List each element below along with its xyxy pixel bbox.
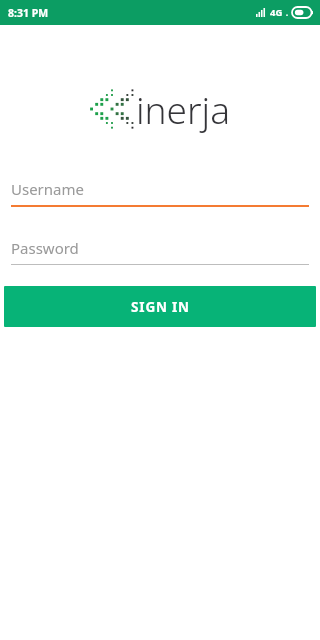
staticText: Username [11, 179, 84, 199]
button[interactable]: SIGN IN [4, 286, 316, 327]
staticText: 4G [270, 6, 283, 19]
button[interactable]: Password [0, 238, 320, 265]
staticText: inerja [136, 84, 231, 134]
staticText: SIGN IN [131, 298, 190, 316]
button[interactable]: Username [0, 179, 320, 207]
staticText: Password [11, 238, 79, 258]
staticText: 8:31 PM [8, 6, 49, 20]
